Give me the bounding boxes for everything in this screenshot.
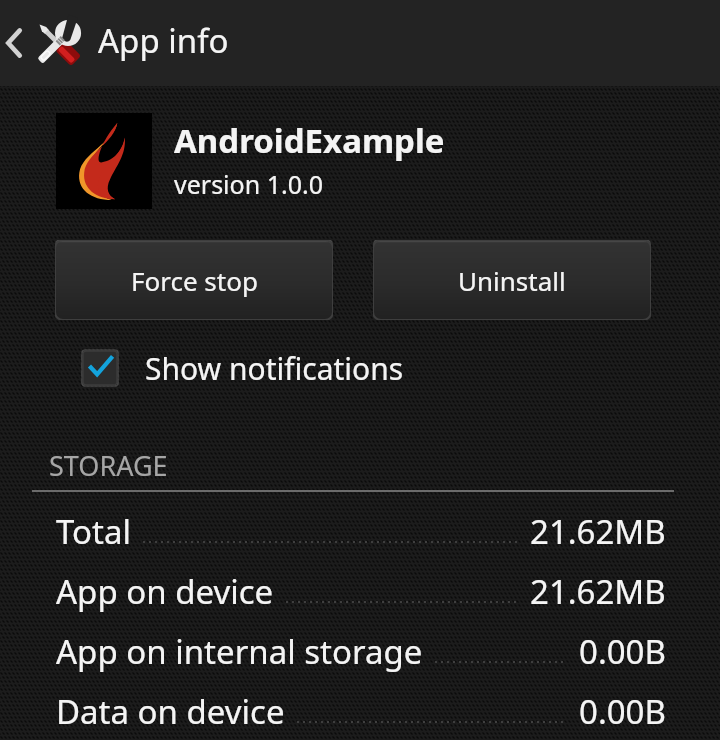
- button[interactable]: App on internal storage: [0, 622, 720, 680]
- button[interactable]: Total: [0, 502, 720, 560]
- button[interactable]: Force stop: [55, 240, 333, 320]
- button[interactable]: Uninstall: [373, 240, 651, 320]
- button[interactable]: Navigate up: [0, 0, 720, 86]
- button[interactable]: Data on device: [0, 682, 720, 740]
- staticText: 0.00B: [579, 629, 666, 674]
- staticText: Force stop: [131, 263, 258, 298]
- staticText: Data on device: [56, 689, 285, 734]
- staticText: version 1.0.0: [174, 167, 323, 201]
- staticText: AndroidExample: [174, 118, 445, 163]
- staticText: App on internal storage: [56, 629, 423, 674]
- staticText: App on device: [56, 569, 274, 614]
- button[interactable]: Show notifications: [83, 341, 404, 395]
- staticText: App info: [98, 18, 229, 63]
- staticText: Total: [56, 509, 131, 554]
- staticText: Uninstall: [458, 263, 566, 298]
- staticText: STORAGE: [49, 447, 168, 484]
- button[interactable]: App on device: [0, 562, 720, 620]
- staticText: 21.62MB: [530, 509, 666, 554]
- staticText: 0.00B: [579, 689, 666, 734]
- staticText: Show notifications: [145, 348, 404, 389]
- staticText: 21.62MB: [530, 569, 666, 614]
